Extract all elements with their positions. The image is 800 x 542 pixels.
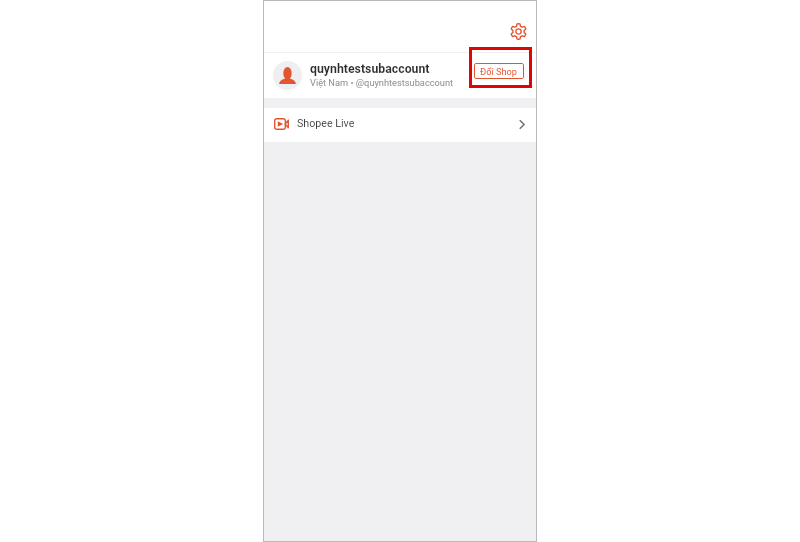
button[interactable]: quynhtestsubaccount <box>263 53 537 98</box>
staticText: Việt Nam • @quynhtestsubaccount <box>310 77 454 88</box>
button[interactable]: Settings <box>505 18 531 44</box>
staticText: Đổi Shop <box>480 66 518 77</box>
staticText: quynhtestsubaccount <box>310 62 430 76</box>
button[interactable]: Đổi Shop <box>474 63 524 79</box>
staticText: Shopee Live <box>297 117 355 130</box>
button[interactable]: Shopee Live <box>263 108 537 142</box>
